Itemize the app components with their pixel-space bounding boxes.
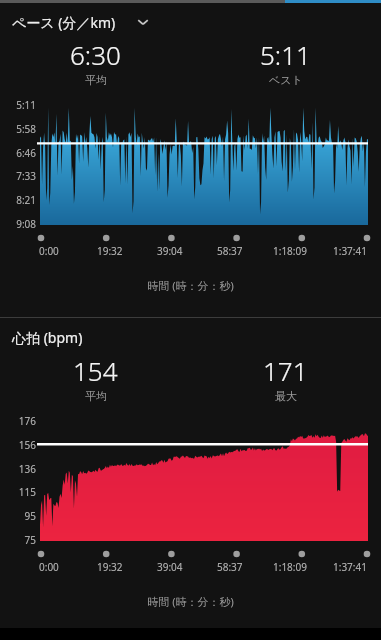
staticText: 平均 [85,389,107,403]
staticText: 19:32 [97,560,123,574]
staticText: 58:37 [217,244,243,258]
staticText: 39:04 [157,560,183,574]
staticText: 1:37:41 [333,560,367,574]
staticText: 75 [24,533,36,547]
staticText: 115 [18,485,36,499]
staticText: 8:21 [16,193,36,207]
staticText: 154 [73,353,118,388]
staticText: 39:04 [157,244,183,258]
button[interactable]: 心拍 (bpm) [12,328,381,347]
staticText: ベスト [269,73,303,87]
staticText: 0:00 [39,560,59,574]
staticText: 176 [18,414,36,428]
staticText: 心拍 (bpm) [12,328,83,347]
staticText: 156 [18,438,36,452]
staticText: 95 [24,509,36,523]
other: Expand pace [132,11,154,33]
staticText: 5:11 [16,98,36,112]
button[interactable]: ペース (分／km) [12,11,381,33]
staticText: ペース (分／km) [12,13,116,32]
staticText: 1:18:09 [273,244,307,258]
staticText: 最大 [275,389,297,403]
staticText: 58:37 [217,560,243,574]
staticText: 7:33 [16,169,36,183]
staticText: 平均 [85,73,107,87]
staticText: 6:46 [16,146,36,160]
staticText: 5:11 [260,37,311,72]
staticText: 136 [18,462,36,476]
staticText: 19:32 [97,244,123,258]
staticText: 6:30 [70,37,121,72]
staticText: 171 [263,353,308,388]
staticText: 0:00 [39,244,59,258]
staticText: 1:18:09 [273,560,307,574]
staticText: 時間 (時：分：秒) [0,594,381,609]
staticText: 1:37:41 [333,244,367,258]
staticText: 9:08 [16,217,36,231]
staticText: 5:58 [16,122,36,136]
staticText: 時間 (時：分：秒) [0,278,381,293]
